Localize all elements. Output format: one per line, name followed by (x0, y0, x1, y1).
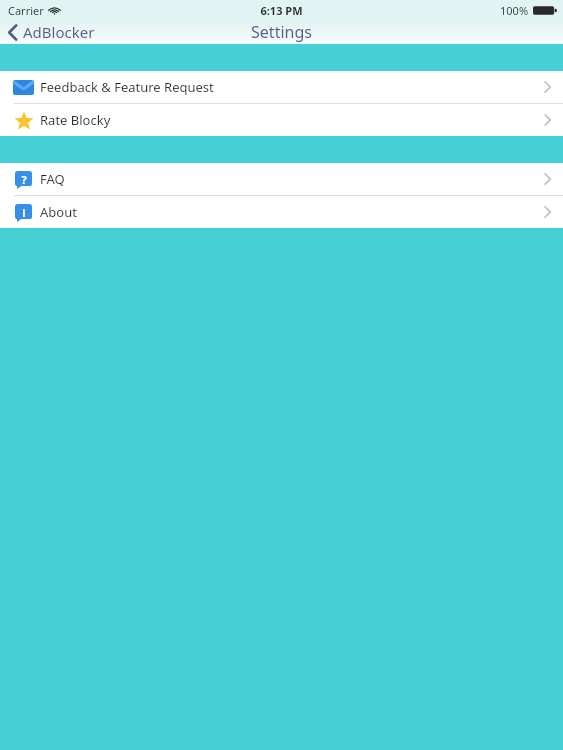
staticText: ? (21, 172, 27, 187)
staticText: AdBlocker (23, 22, 95, 42)
staticText: FAQ (40, 170, 65, 188)
staticText: Carrier (8, 3, 44, 18)
staticText: About (40, 203, 77, 221)
staticText: Settings (251, 21, 312, 43)
button[interactable]: AdBlocker (0, 20, 105, 44)
staticText: 6:13 PM (260, 3, 303, 18)
staticText: i (22, 205, 26, 220)
button[interactable]: Rate Blocky (0, 104, 563, 136)
button[interactable]: i (0, 196, 563, 228)
staticText: Feedback & Feature Request (40, 78, 214, 96)
staticText: 100% (500, 3, 529, 18)
button[interactable]: ? (0, 163, 563, 195)
button[interactable]: Feedback & Feature Request (0, 71, 563, 103)
staticText: Rate Blocky (40, 111, 111, 129)
